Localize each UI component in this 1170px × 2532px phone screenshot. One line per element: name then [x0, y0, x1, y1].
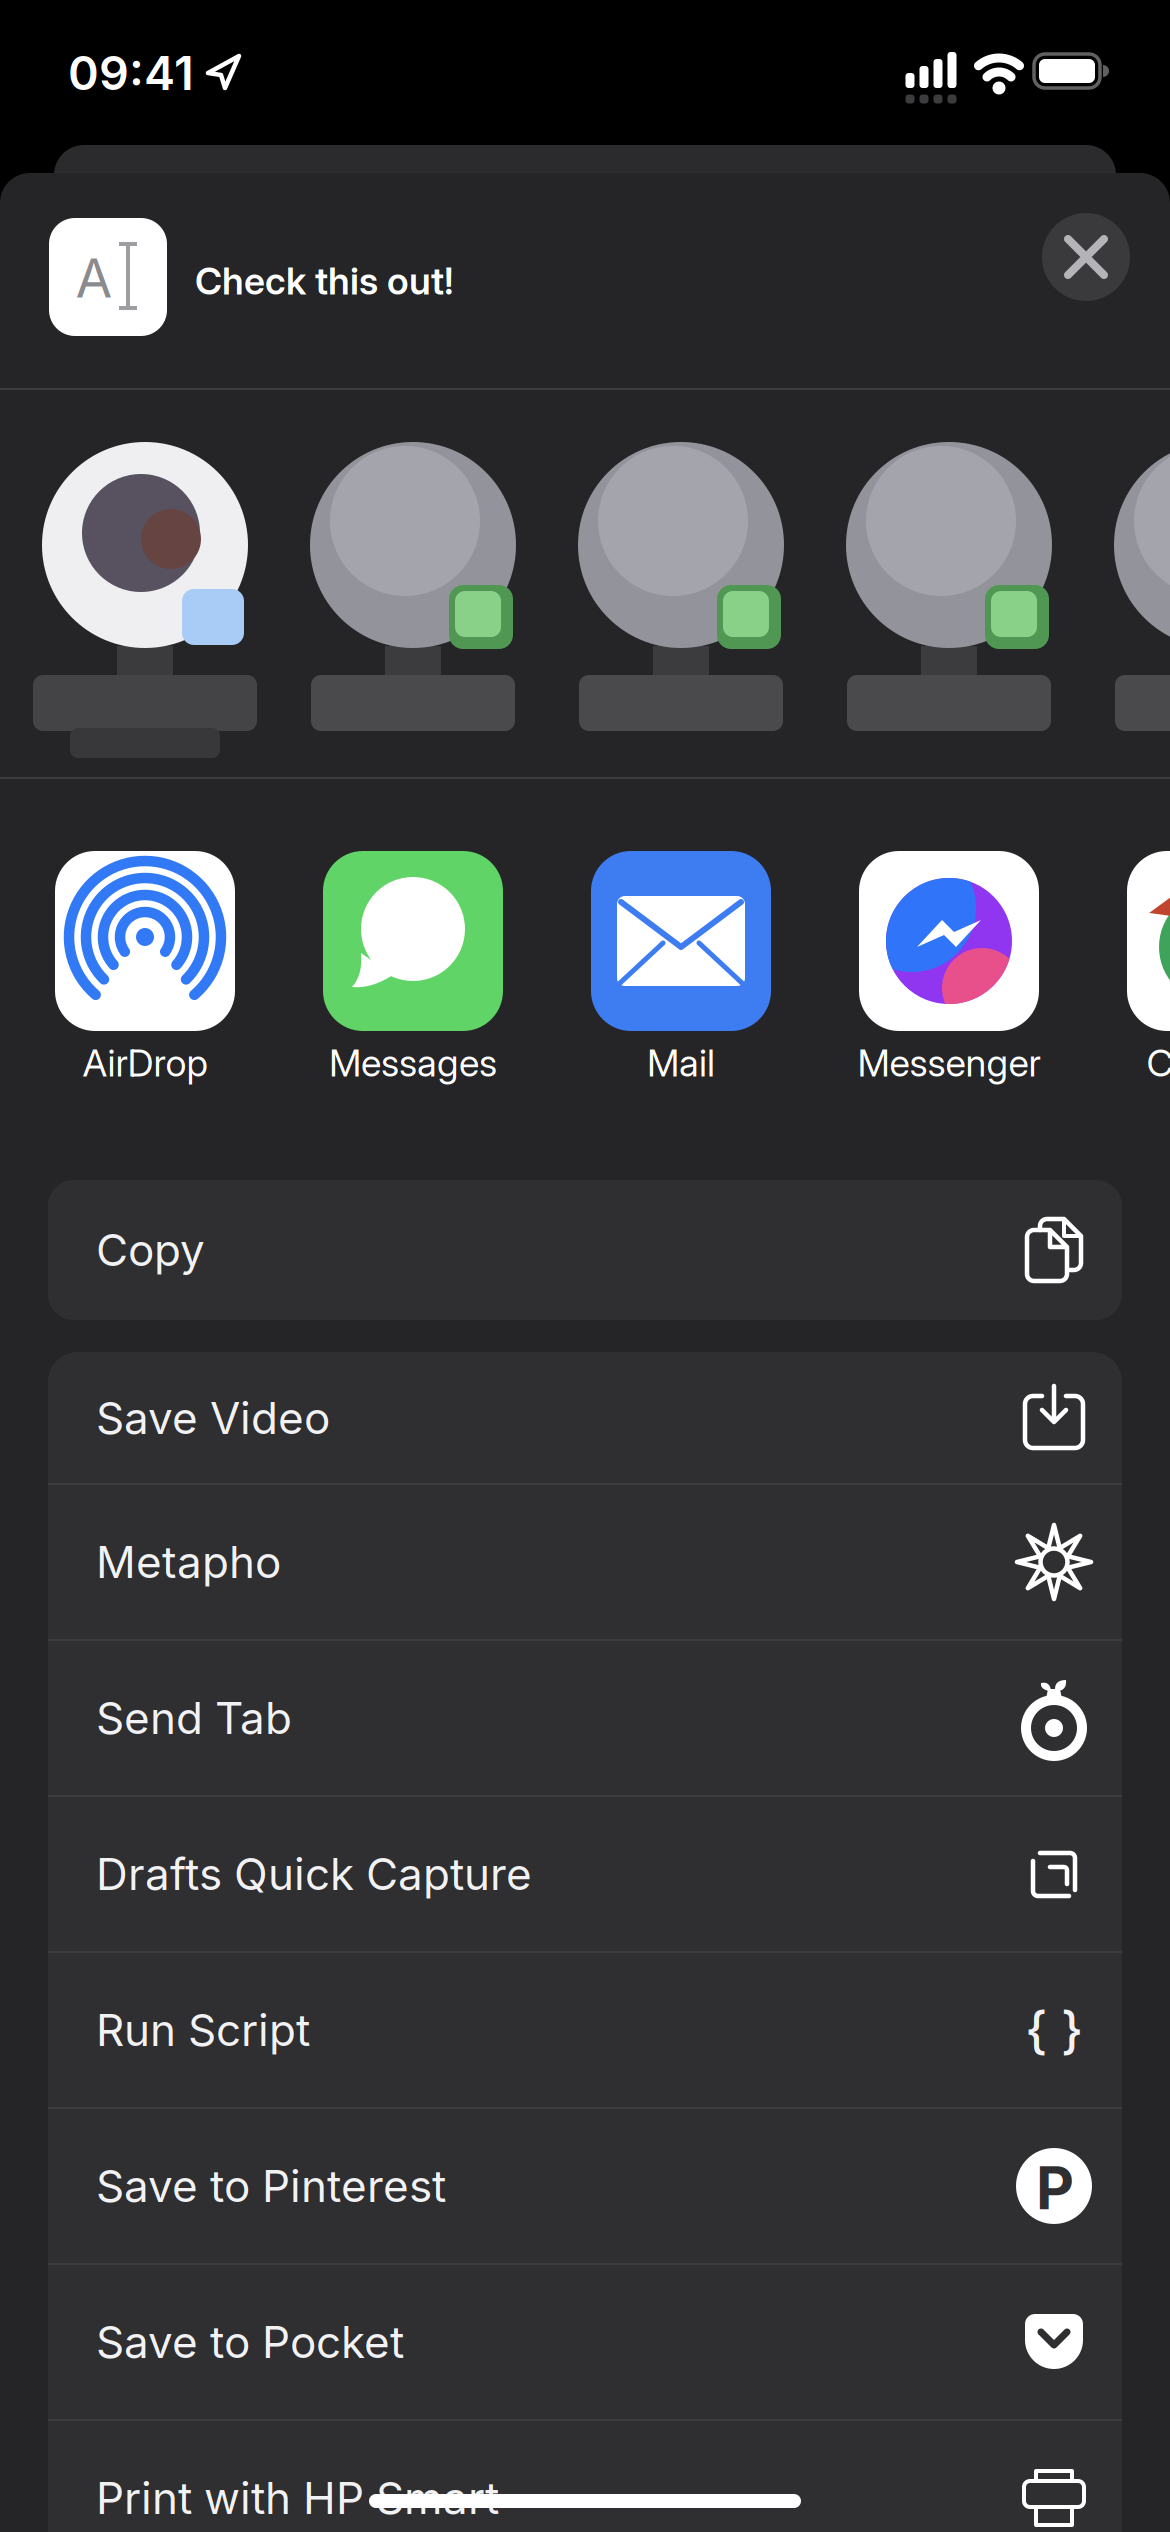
staticText: Messages [329, 1041, 497, 1085]
button[interactable]: Mail [547, 851, 815, 1101]
staticText: Send Tab [96, 1692, 292, 1744]
staticText: Save Video [96, 1392, 330, 1444]
staticText: 09:41 [68, 45, 194, 101]
button[interactable]: Close [1042, 213, 1130, 301]
staticText: A [75, 246, 112, 309]
staticText: Run Script [96, 2004, 310, 2056]
button[interactable]: Run Script [48, 1952, 1122, 2108]
button[interactable]: AirDrop contact [547, 437, 815, 837]
staticText: Save to Pocket [96, 2316, 404, 2368]
button[interactable]: Save to Pinterest [48, 2108, 1122, 2264]
button[interactable]: Drafts Quick Capture [48, 1796, 1122, 1952]
button[interactable]: Messenger [815, 851, 1083, 1101]
staticText: P [1036, 2153, 1074, 2223]
staticText: Mail [647, 1041, 715, 1085]
button[interactable]: Messages [279, 851, 547, 1101]
staticText: C [1146, 1041, 1170, 1085]
button[interactable]: Send Tab [48, 1640, 1122, 1796]
staticText: Copy [96, 1224, 205, 1276]
staticText: Messenger [857, 1041, 1040, 1085]
staticText: Metapho [96, 1536, 281, 1588]
staticText: Print with HP Smart [96, 2472, 499, 2524]
staticText: Drafts Quick Capture [96, 1848, 532, 1900]
button[interactable]: Metapho [48, 1484, 1122, 1640]
staticText: { } [1025, 2000, 1083, 2060]
staticText: Save to Pinterest [96, 2160, 446, 2212]
button[interactable]: Save Video [48, 1352, 1122, 1484]
button[interactable]: Print with HP Smart [48, 2420, 1122, 2532]
staticText: Check this out! [195, 259, 454, 303]
button[interactable]: AirDrop contact [1083, 437, 1170, 837]
button[interactable]: AirDrop contact [815, 437, 1083, 837]
button[interactable]: AirDrop contact [11, 437, 279, 837]
button[interactable]: Copy [48, 1180, 1122, 1320]
button[interactable]: AirDrop [11, 851, 279, 1101]
staticText: AirDrop [82, 1041, 207, 1085]
button[interactable]: C [1083, 851, 1170, 1101]
button[interactable]: Save to Pocket [48, 2264, 1122, 2420]
button[interactable]: AirDrop contact [279, 437, 547, 837]
